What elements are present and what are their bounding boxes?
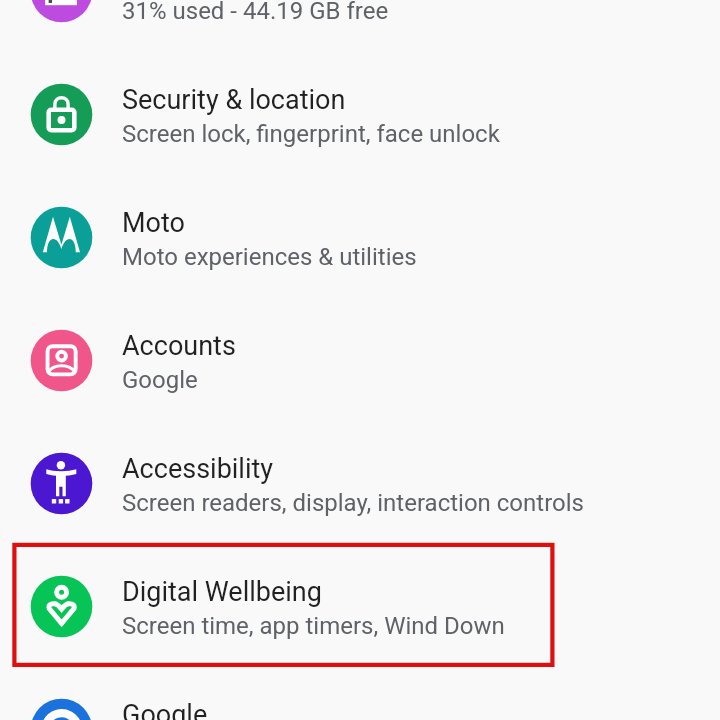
- staticText: Screen readers, display, interaction con…: [122, 489, 584, 517]
- button[interactable]: 31% used - 44.19 GB free: [0, 0, 720, 53]
- staticText: 31% used - 44.19 GB free: [122, 0, 389, 25]
- staticText: Digital Wellbeing: [122, 576, 322, 608]
- button[interactable]: Accounts: [0, 299, 720, 422]
- staticText: Google: [122, 699, 208, 720]
- button[interactable]: Google: [0, 668, 720, 720]
- staticText: Google: [122, 366, 198, 394]
- staticText: Accessibility: [122, 453, 274, 485]
- staticText: Screen lock, fingerprint, face unlock: [122, 120, 500, 148]
- staticText: Accounts: [122, 330, 236, 362]
- staticText: Screen time, app timers, Wind Down: [122, 612, 505, 640]
- staticText: Moto: [122, 207, 185, 239]
- button[interactable]: Accessibility: [0, 422, 720, 545]
- button[interactable]: Digital Wellbeing: [0, 545, 720, 668]
- staticText: Security & location: [122, 84, 346, 116]
- staticText: Moto experiences & utilities: [122, 243, 417, 271]
- button[interactable]: Moto: [0, 176, 720, 299]
- button[interactable]: Security & location: [0, 53, 720, 176]
